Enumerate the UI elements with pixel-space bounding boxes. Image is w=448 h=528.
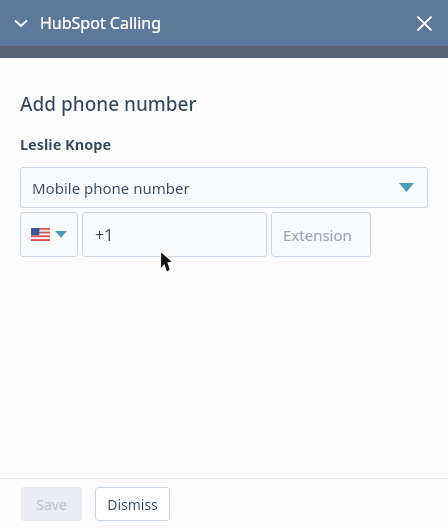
button[interactable]: Extension	[271, 212, 371, 257]
staticText: Add phone number	[20, 91, 197, 117]
staticText: Save	[36, 495, 67, 514]
staticText: Mobile phone number	[32, 178, 190, 198]
button[interactable]: Dismiss	[95, 487, 170, 521]
staticText: Leslie Knope	[20, 134, 112, 154]
button[interactable]: Save	[21, 487, 82, 521]
staticText: Extension	[283, 225, 352, 245]
button[interactable]: +1	[82, 212, 267, 257]
button[interactable]: Mobile phone number	[20, 167, 428, 208]
staticText: Dismiss	[107, 495, 158, 514]
staticText: +1	[95, 224, 114, 246]
button[interactable]: Select country	[20, 212, 78, 257]
button[interactable]: Collapse	[6, 8, 36, 38]
button[interactable]: Close	[408, 7, 440, 39]
staticText: HubSpot Calling	[40, 12, 162, 34]
